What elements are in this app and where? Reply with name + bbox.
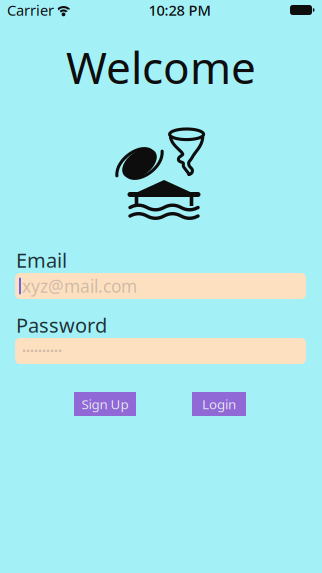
button[interactable]: Login xyxy=(192,392,246,416)
staticText: xyz@mail.com xyxy=(22,274,137,297)
staticText: Password xyxy=(16,312,107,338)
staticText: Sign Up xyxy=(81,395,128,413)
staticText: Email xyxy=(16,247,67,273)
staticText: Login xyxy=(202,395,236,413)
staticText: •••••••••• xyxy=(22,344,62,358)
button[interactable]: Sign Up xyxy=(74,392,136,416)
staticText: Carrier xyxy=(7,0,54,20)
staticText: 10:28 PM xyxy=(148,0,210,20)
staticText: Welcome xyxy=(66,38,256,96)
